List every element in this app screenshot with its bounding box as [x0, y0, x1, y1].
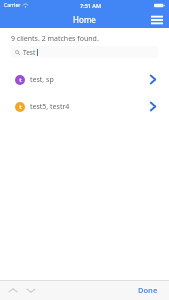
- button[interactable]: Test: [11, 46, 158, 58]
- button[interactable]: t: [5, 94, 164, 119]
- staticText: test5, testr4: [30, 102, 70, 112]
- staticText: Done: [138, 285, 158, 295]
- button[interactable]: Menu: [150, 13, 164, 27]
- staticText: t: [19, 103, 22, 111]
- staticText: Test: [23, 48, 36, 57]
- button[interactable]: Previous field: [6, 282, 20, 298]
- staticText: 7:51 AM: [80, 2, 102, 9]
- staticText: 9 clients. 2 matches found.: [11, 34, 99, 44]
- staticText: Home: [73, 14, 96, 25]
- button[interactable]: Done: [135, 283, 161, 297]
- button[interactable]: Next field: [24, 282, 38, 298]
- staticText: test, sp: [30, 75, 54, 85]
- staticText: Carrier: [4, 2, 21, 9]
- staticText: t: [19, 76, 22, 84]
- button[interactable]: t: [5, 67, 164, 92]
